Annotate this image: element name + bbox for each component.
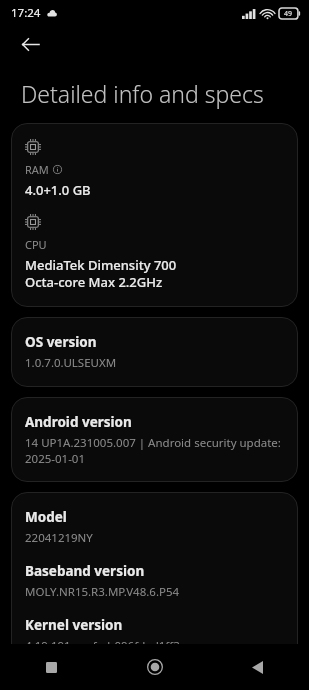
staticText: MOLY.NR15.R3.MP.V48.6.P54 bbox=[25, 584, 180, 600]
staticText: 14 UP1A.231005.007 | Android security up… bbox=[25, 435, 281, 466]
button[interactable]: RAM bbox=[11, 123, 298, 307]
staticText: Android version bbox=[25, 413, 132, 431]
staticText: OS version bbox=[25, 333, 97, 351]
staticText: 22041219NY bbox=[25, 530, 93, 546]
staticText: 4.19.191-perf-gb096fdad1ff3 bbox=[25, 638, 180, 644]
staticText: CPU bbox=[25, 237, 47, 252]
staticText: 49 bbox=[284, 9, 293, 19]
button[interactable]: OS version bbox=[11, 317, 298, 387]
staticText: 1.0.7.0.ULSEUXM bbox=[25, 355, 117, 371]
button[interactable]: Recents bbox=[0, 644, 103, 690]
staticText: Detailed info and specs bbox=[21, 78, 264, 109]
staticText: 4.0+1.0 GB bbox=[25, 181, 91, 199]
staticText: MediaTek Dimensity 700 Octa-core Max 2.2… bbox=[25, 256, 177, 291]
staticText: Model bbox=[25, 508, 67, 526]
button[interactable]: Home bbox=[103, 644, 206, 690]
button[interactable]: Android version bbox=[11, 397, 298, 482]
staticText: Kernel version bbox=[25, 616, 123, 634]
staticText: 17:24 bbox=[11, 5, 41, 21]
staticText: RAM bbox=[25, 162, 49, 177]
button[interactable]: Model bbox=[11, 492, 298, 644]
staticText: Baseband version bbox=[25, 562, 145, 580]
button[interactable]: Back bbox=[11, 26, 49, 62]
button[interactable]: Back bbox=[206, 644, 309, 690]
